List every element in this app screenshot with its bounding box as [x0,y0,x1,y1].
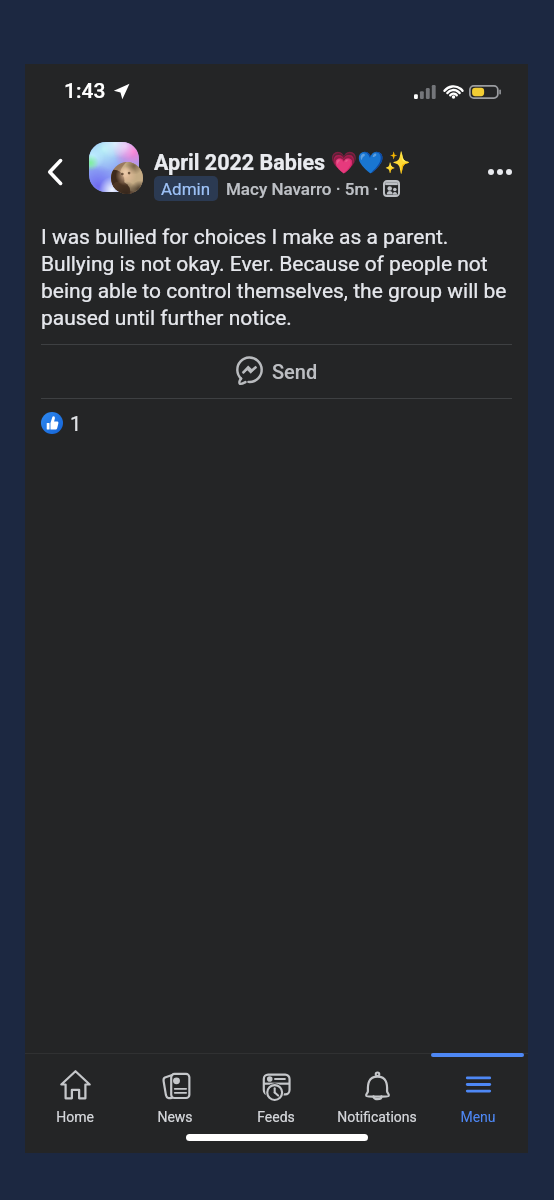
staticText: Menu [460,1109,496,1125]
staticText: Admin [161,179,211,199]
button[interactable]: Feeds [225,1054,326,1111]
staticText: Feeds [257,1109,295,1125]
staticText: I was bullied for choices I make as a pa… [41,225,507,330]
staticText: April 2022 Babies 💗💙✨ [154,150,411,175]
button[interactable]: Notifications [326,1054,427,1111]
button[interactable]: Back [33,150,77,194]
staticText: News [157,1109,193,1125]
staticText: Macy Navarro · 5m · [226,179,383,199]
staticText: Notifications [337,1109,417,1125]
staticText: 1:43 [64,79,106,104]
staticText: Send [272,360,318,383]
button[interactable]: Send [25,345,528,398]
button[interactable]: News [125,1054,225,1111]
button[interactable]: Admin [154,176,218,201]
staticText: Home [56,1109,94,1125]
button[interactable]: Home [25,1054,125,1111]
button[interactable]: Menu [427,1054,528,1111]
button[interactable]: More options [478,150,522,194]
staticText: 1 [70,412,82,435]
